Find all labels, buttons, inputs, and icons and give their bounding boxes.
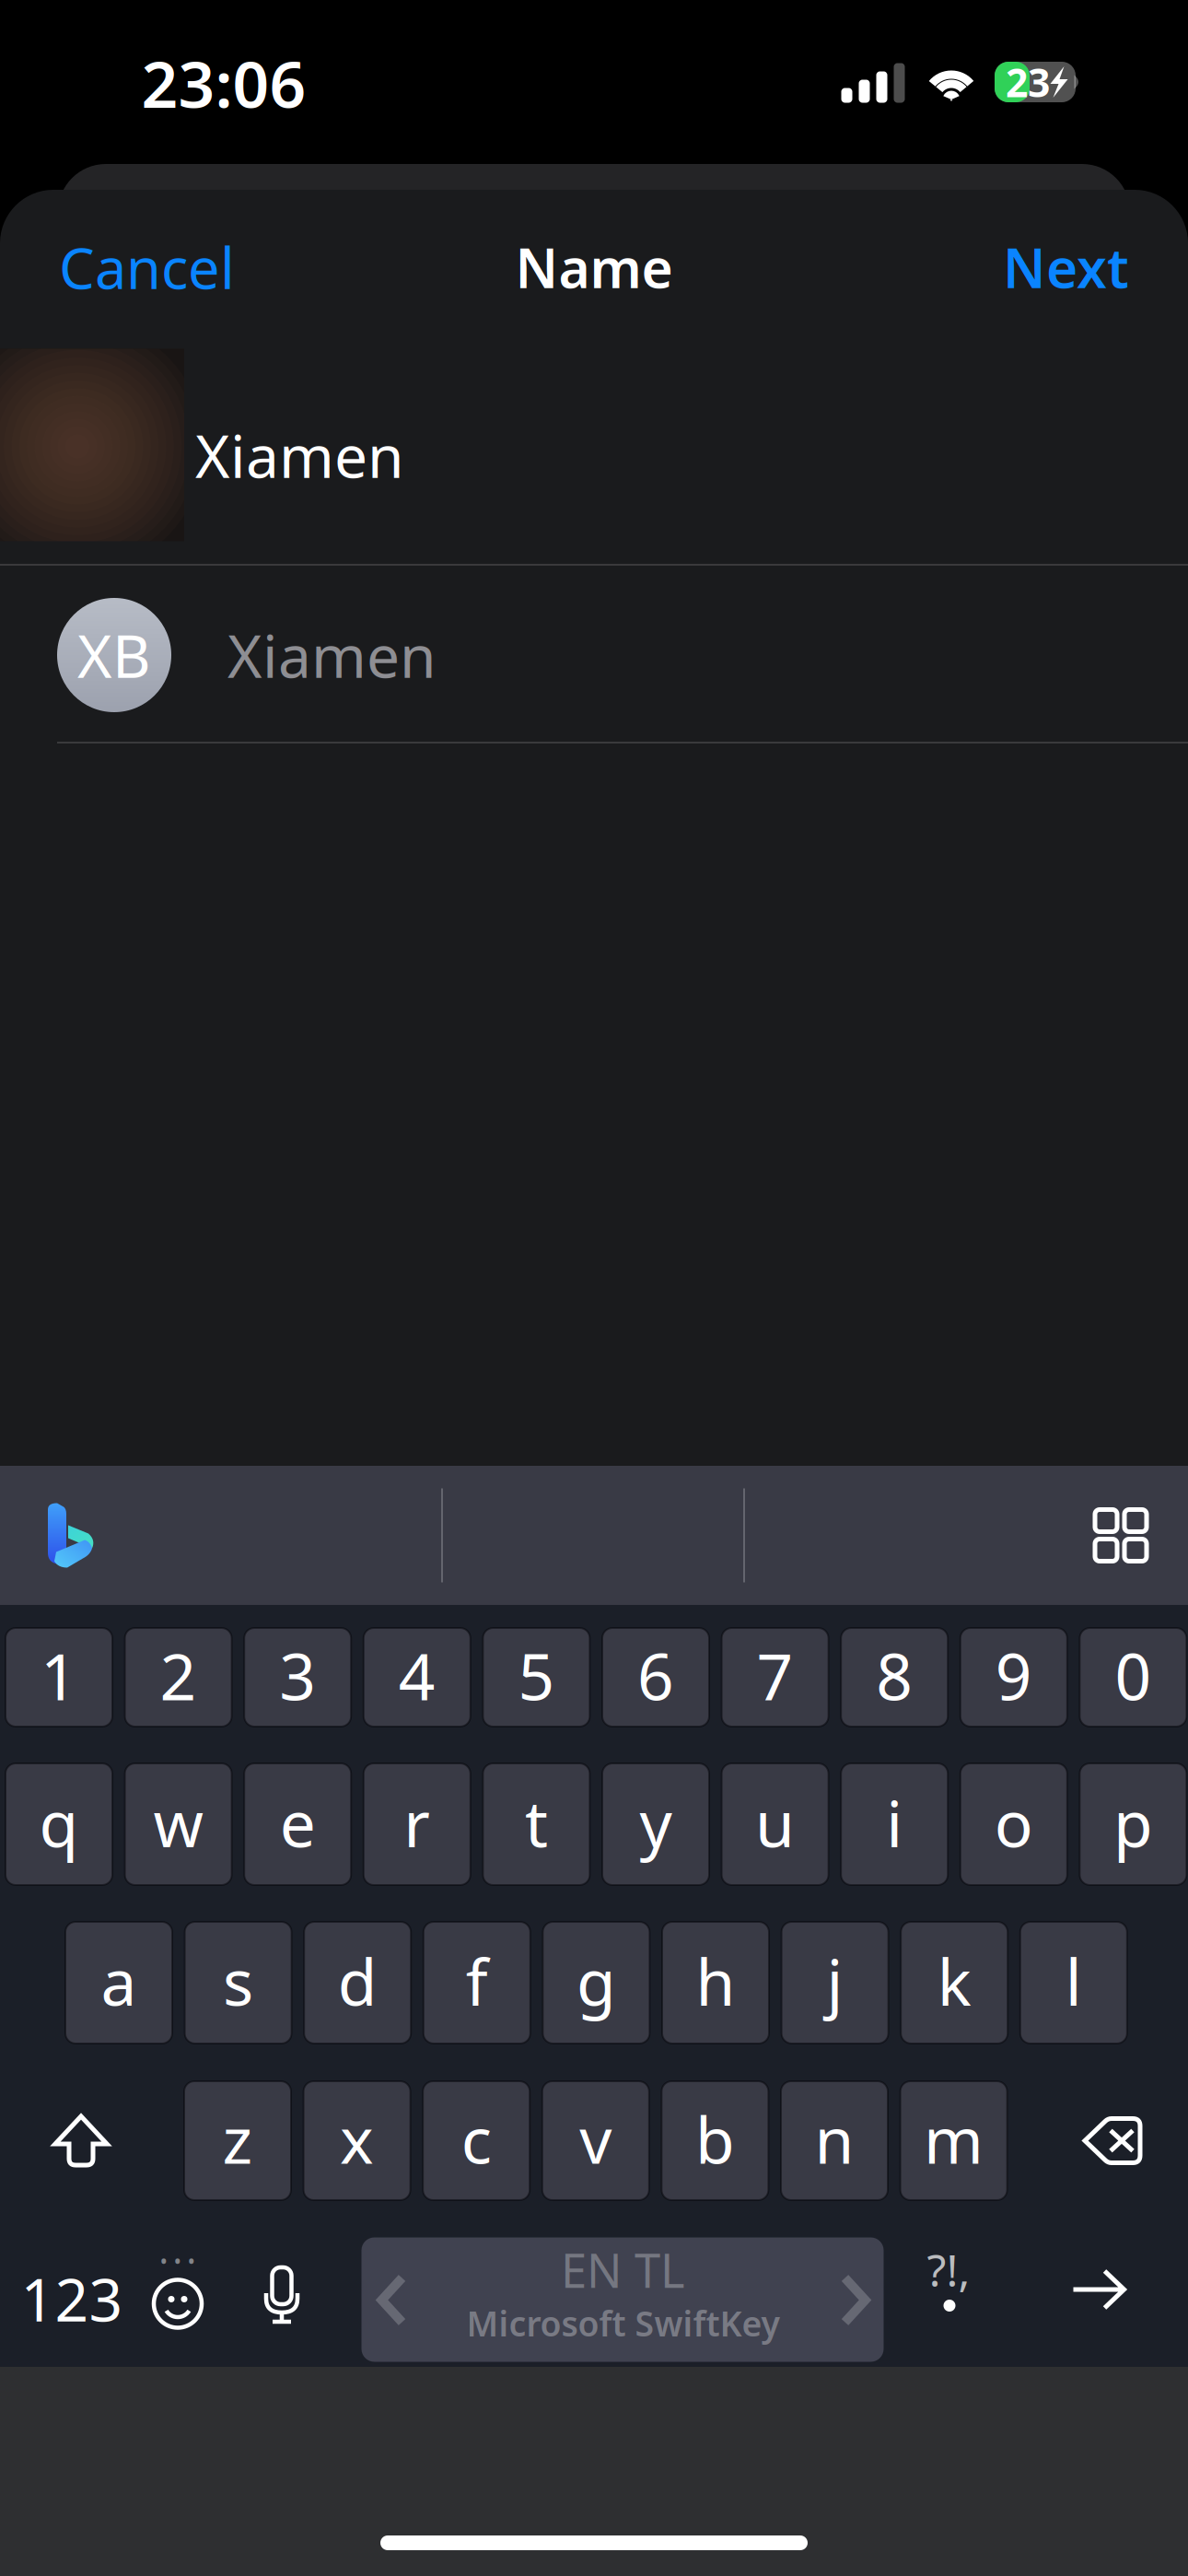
button[interactable]: s bbox=[185, 1922, 292, 2043]
staticText: 8 bbox=[876, 1633, 913, 1718]
button[interactable]: 8 bbox=[841, 1628, 948, 1727]
staticText: 1 bbox=[41, 1633, 77, 1718]
staticText: z bbox=[222, 2096, 253, 2181]
button[interactable]: Return bbox=[1034, 2228, 1163, 2351]
button[interactable]: d bbox=[304, 1922, 411, 2043]
staticText: s bbox=[223, 1938, 253, 2023]
button[interactable]: b bbox=[662, 2081, 768, 2200]
button[interactable]: 5 bbox=[483, 1628, 590, 1727]
staticText: o bbox=[994, 1780, 1033, 1865]
staticText: q bbox=[39, 1780, 79, 1865]
button[interactable]: f bbox=[423, 1922, 530, 2043]
button[interactable]: Cancel bbox=[46, 209, 248, 325]
staticText: 4 bbox=[399, 1633, 435, 1718]
staticText: EN TL bbox=[561, 2239, 685, 2301]
staticText: j bbox=[827, 1938, 843, 2023]
button[interactable]: y bbox=[602, 1763, 709, 1885]
staticText: XB bbox=[77, 616, 151, 694]
staticText: Cancel bbox=[59, 230, 235, 305]
button[interactable]: Shift bbox=[7, 2081, 155, 2200]
staticText: 6 bbox=[637, 1633, 674, 1718]
button[interactable]: v bbox=[542, 2081, 649, 2200]
button[interactable]: p bbox=[1080, 1763, 1187, 1885]
button[interactable]: EN TL bbox=[361, 2237, 884, 2362]
staticText: t bbox=[525, 1780, 548, 1865]
staticText: w bbox=[153, 1780, 203, 1865]
button[interactable]: c bbox=[423, 2081, 530, 2200]
button[interactable]: Choose photo bbox=[0, 349, 184, 541]
button[interactable]: 6 bbox=[602, 1628, 709, 1727]
button[interactable]: Keyboard modes bbox=[1066, 1480, 1176, 1591]
staticText: 23 bbox=[1006, 56, 1050, 108]
button[interactable]: XB bbox=[0, 566, 1188, 744]
staticText: d bbox=[338, 1938, 377, 2023]
staticText: 3 bbox=[279, 1633, 316, 1718]
staticText: 9 bbox=[995, 1633, 1032, 1718]
staticText: 5 bbox=[518, 1633, 555, 1718]
button[interactable]: l bbox=[1020, 1922, 1127, 2043]
staticText: b bbox=[695, 2096, 735, 2181]
staticText: 7 bbox=[757, 1633, 793, 1718]
staticText: l bbox=[1065, 1938, 1082, 2023]
button[interactable]: w bbox=[125, 1763, 232, 1885]
staticText: g bbox=[576, 1938, 616, 2023]
button[interactable]: n bbox=[781, 2081, 888, 2200]
button[interactable]: 7 bbox=[722, 1628, 828, 1727]
button[interactable]: x bbox=[304, 2081, 410, 2200]
button[interactable]: j bbox=[782, 1922, 888, 2043]
staticText: c bbox=[461, 2096, 492, 2181]
button[interactable]: 2 bbox=[125, 1628, 232, 1727]
staticText: • • • bbox=[160, 2247, 196, 2275]
button[interactable]: Next bbox=[990, 211, 1142, 323]
button[interactable]: k bbox=[901, 1922, 1008, 2043]
button[interactable]: u bbox=[722, 1763, 828, 1885]
button[interactable]: 9 bbox=[960, 1628, 1067, 1727]
button[interactable]: 3 bbox=[244, 1628, 351, 1727]
staticText: e bbox=[280, 1780, 316, 1865]
button[interactable]: Emoji bbox=[122, 2230, 233, 2353]
button[interactable]: Bing search bbox=[10, 1475, 130, 1595]
button[interactable]: q bbox=[6, 1763, 112, 1885]
staticText: i bbox=[886, 1780, 903, 1865]
button[interactable]: m bbox=[900, 2081, 1007, 2200]
button[interactable]: a bbox=[65, 1922, 172, 2043]
staticText: 2 bbox=[160, 1633, 197, 1718]
staticText: Next bbox=[1003, 231, 1129, 303]
staticText: x bbox=[340, 2096, 374, 2181]
button[interactable]: 0 bbox=[1080, 1628, 1187, 1727]
button[interactable]: Punctuation bbox=[893, 2238, 1004, 2361]
button[interactable]: Xiamen bbox=[0, 400, 1188, 510]
button[interactable]: t bbox=[483, 1763, 590, 1885]
button[interactable]: g bbox=[543, 1922, 650, 2043]
button[interactable]: o bbox=[960, 1763, 1067, 1885]
staticText: n bbox=[815, 2096, 854, 2181]
staticText: m bbox=[924, 2096, 984, 2181]
button[interactable]: Dictate bbox=[227, 2238, 337, 2361]
staticText: ?!, bbox=[927, 2240, 970, 2299]
staticText: 123 bbox=[21, 2260, 123, 2338]
button[interactable]: Backspace bbox=[1039, 2081, 1186, 2200]
staticText: h bbox=[696, 1938, 735, 2023]
button[interactable]: 1 bbox=[6, 1628, 112, 1727]
staticText: y bbox=[640, 1780, 672, 1865]
button[interactable]: 4 bbox=[364, 1628, 470, 1727]
staticText: Xiamen bbox=[227, 616, 437, 694]
button[interactable]: h bbox=[662, 1922, 769, 2043]
staticText: 0 bbox=[1115, 1633, 1152, 1718]
staticText: u bbox=[755, 1780, 795, 1865]
staticText: v bbox=[580, 2096, 612, 2181]
staticText: a bbox=[101, 1938, 137, 2023]
staticText: Name bbox=[515, 231, 673, 303]
button[interactable]: e bbox=[244, 1763, 351, 1885]
button[interactable]: r bbox=[364, 1763, 470, 1885]
button[interactable]: 123 bbox=[7, 2237, 136, 2360]
staticText: r bbox=[404, 1780, 430, 1865]
staticText: 23:06 bbox=[141, 41, 306, 125]
staticText: p bbox=[1113, 1780, 1153, 1865]
button[interactable]: z bbox=[184, 2081, 291, 2200]
staticText: Xiamen bbox=[195, 416, 404, 494]
staticText: f bbox=[466, 1938, 488, 2023]
button[interactable]: i bbox=[841, 1763, 948, 1885]
staticText: Microsoft SwiftKey bbox=[466, 2300, 780, 2346]
staticText: k bbox=[937, 1938, 971, 2023]
